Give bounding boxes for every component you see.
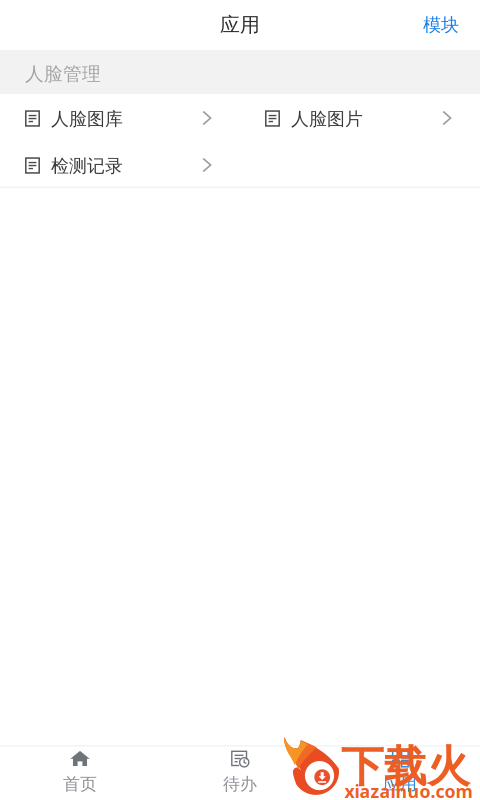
staticText: 检测记录 xyxy=(51,155,123,177)
staticText: xiazaihuo.com xyxy=(344,779,472,800)
button[interactable]: 首页 xyxy=(0,740,160,800)
button[interactable]: 检测记录 xyxy=(0,141,240,188)
staticText: 人脸管理 xyxy=(25,62,101,86)
staticText: 应用 xyxy=(220,12,260,37)
button[interactable]: 应用 xyxy=(320,740,480,800)
staticText: 待办 xyxy=(223,773,257,795)
button[interactable]: 人脸图片 xyxy=(240,94,480,141)
button[interactable]: 待办 xyxy=(160,740,320,800)
staticText: 人脸图库 xyxy=(51,108,123,130)
button[interactable]: 模块 xyxy=(423,5,480,45)
staticText: 下载火 xyxy=(341,740,470,794)
staticText: 模块 xyxy=(423,14,459,36)
button[interactable]: 人脸图库 xyxy=(0,94,240,141)
staticText: 应用 xyxy=(383,773,417,795)
staticText: 首页 xyxy=(63,773,97,795)
staticText: 人脸图片 xyxy=(291,108,363,130)
